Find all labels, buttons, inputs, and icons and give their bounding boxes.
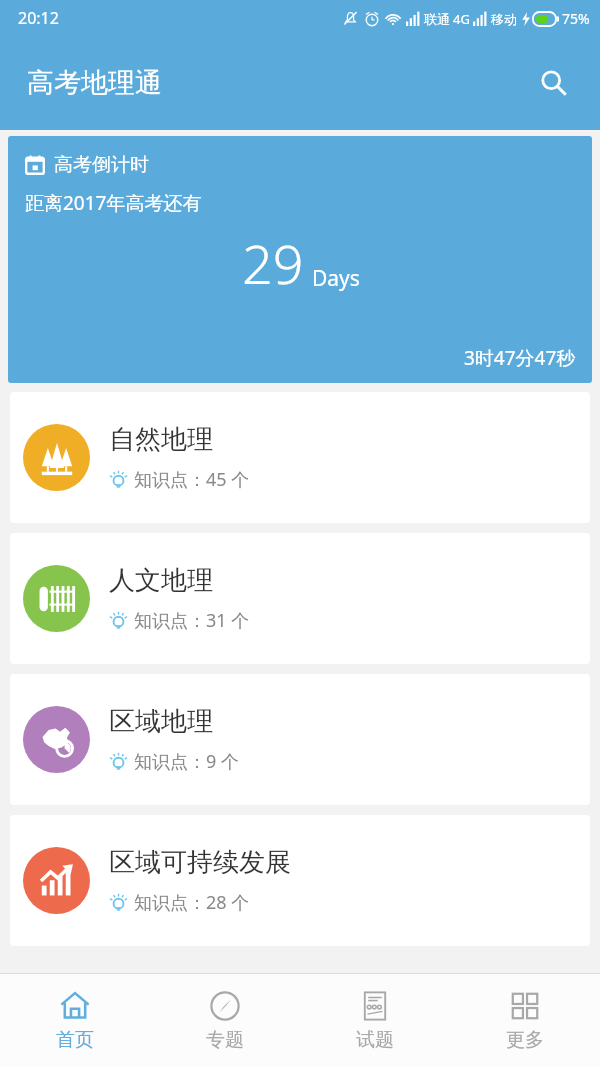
staticText: 区域可持续发展 xyxy=(109,846,291,879)
staticText: 更多 xyxy=(506,1028,544,1052)
staticText: 知识点：31 个 xyxy=(134,608,250,633)
staticText: 20:12 xyxy=(18,7,59,29)
button[interactable]: 试题 xyxy=(300,974,450,1067)
staticText: 试题 xyxy=(356,1028,394,1052)
button[interactable]: 区域地理 xyxy=(10,674,590,805)
staticText: 区域地理 xyxy=(109,705,213,738)
staticText: 29 xyxy=(242,226,304,300)
staticText: 首页 xyxy=(56,1028,94,1052)
button[interactable]: 人文地理 xyxy=(10,533,590,664)
staticText: 距离2017年高考还有 xyxy=(25,190,202,216)
staticText: 移动 xyxy=(491,11,517,27)
staticText: 知识点：45 个 xyxy=(134,467,250,492)
staticText: 专题 xyxy=(206,1028,244,1052)
staticText: 知识点：9 个 xyxy=(134,749,239,774)
staticText: 自然地理 xyxy=(109,423,213,456)
button[interactable]: 首页 xyxy=(0,974,150,1067)
button[interactable]: 区域可持续发展 xyxy=(10,815,590,946)
staticText: 75% xyxy=(562,9,590,28)
staticText: 人文地理 xyxy=(109,564,213,597)
staticText: 4G xyxy=(453,10,470,28)
staticText: 高考地理通 xyxy=(27,66,162,100)
staticText: 3时47分47秒 xyxy=(464,345,576,371)
staticText: 联通 xyxy=(424,11,450,27)
button[interactable]: 自然地理 xyxy=(10,392,590,523)
button[interactable]: 专题 xyxy=(150,974,300,1067)
staticText: 高考倒计时 xyxy=(54,153,149,177)
staticText: Days xyxy=(312,264,360,293)
button[interactable]: Search xyxy=(530,59,578,107)
button[interactable]: 高考倒计时 xyxy=(8,136,592,383)
staticText: 知识点：28 个 xyxy=(134,890,250,915)
button[interactable]: 更多 xyxy=(450,974,600,1067)
